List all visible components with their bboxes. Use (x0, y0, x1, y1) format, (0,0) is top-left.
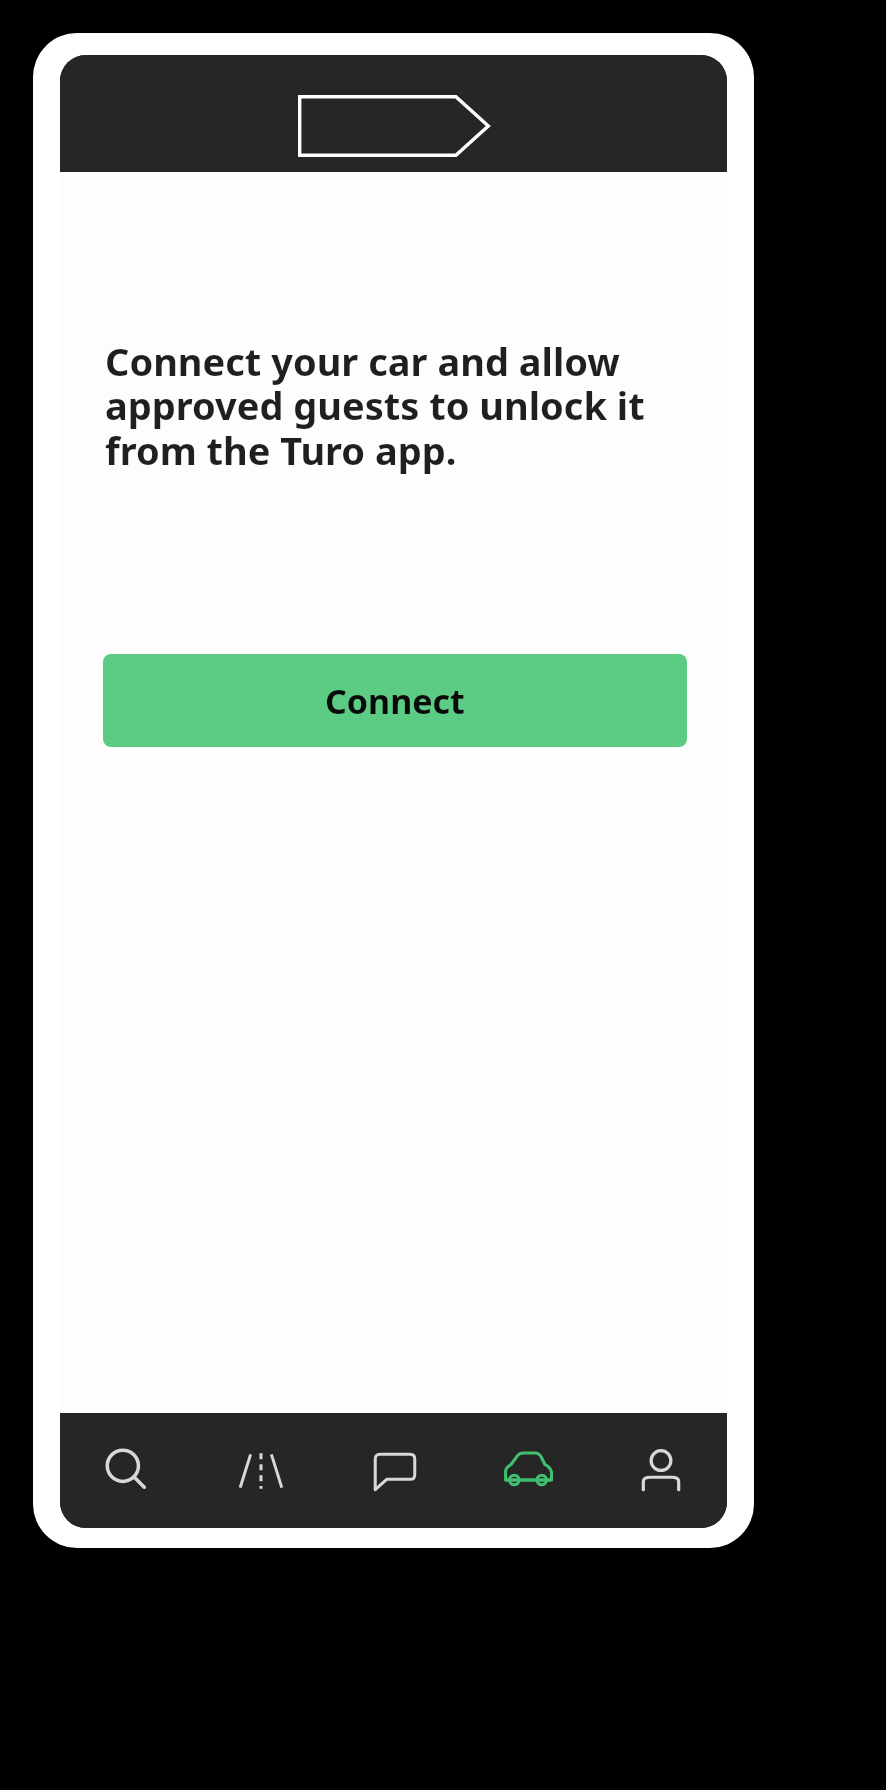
staticText: Connect (325, 678, 465, 724)
button[interactable]: Connect (103, 654, 687, 747)
button[interactable]: Profile (594, 1413, 727, 1528)
button[interactable]: Vehicles (461, 1413, 594, 1528)
button[interactable]: Trips (194, 1413, 328, 1528)
button[interactable]: Inbox (328, 1413, 461, 1528)
staticText: Connect your car and allow approved gues… (105, 335, 687, 476)
button[interactable]: Search (60, 1413, 194, 1528)
